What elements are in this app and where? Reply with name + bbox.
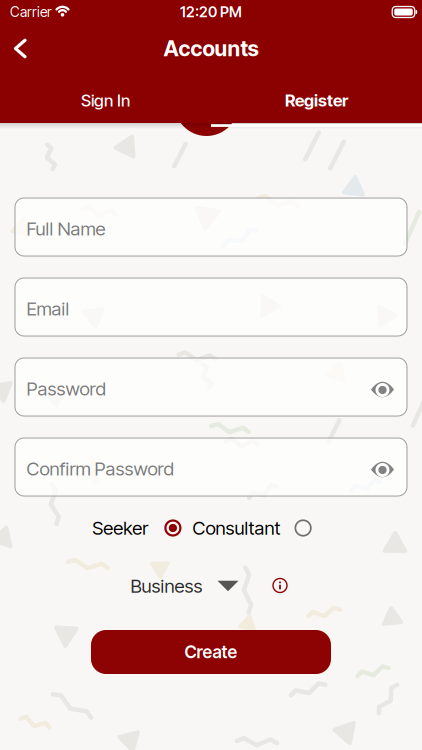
staticText: Sign In bbox=[81, 90, 130, 111]
button[interactable]: Sign In bbox=[0, 73, 211, 123]
staticText: Confirm Password bbox=[26, 457, 173, 480]
button[interactable]: Back bbox=[0, 29, 27, 67]
staticText: Business bbox=[130, 575, 202, 597]
staticText: Full Name bbox=[26, 217, 105, 240]
staticText: Accounts bbox=[163, 36, 258, 61]
button[interactable]: Seeker bbox=[92, 517, 181, 539]
button[interactable]: Consultant bbox=[181, 517, 312, 539]
staticText: Create bbox=[184, 641, 237, 662]
staticText: 12:20 PM bbox=[180, 3, 242, 21]
staticText: Seeker bbox=[92, 517, 148, 539]
staticText: Email bbox=[26, 297, 69, 320]
staticText: Register bbox=[285, 90, 348, 111]
staticText: Carrier bbox=[10, 3, 52, 20]
button[interactable]: Info bbox=[272, 577, 288, 593]
button[interactable]: Business type bbox=[130, 575, 238, 597]
staticText: Password bbox=[26, 377, 105, 400]
button[interactable]: Show password bbox=[371, 379, 407, 395]
button[interactable]: Create bbox=[91, 630, 331, 674]
staticText: Consultant bbox=[192, 517, 280, 539]
button[interactable]: Show password bbox=[371, 459, 407, 475]
button[interactable]: Register bbox=[211, 73, 422, 123]
